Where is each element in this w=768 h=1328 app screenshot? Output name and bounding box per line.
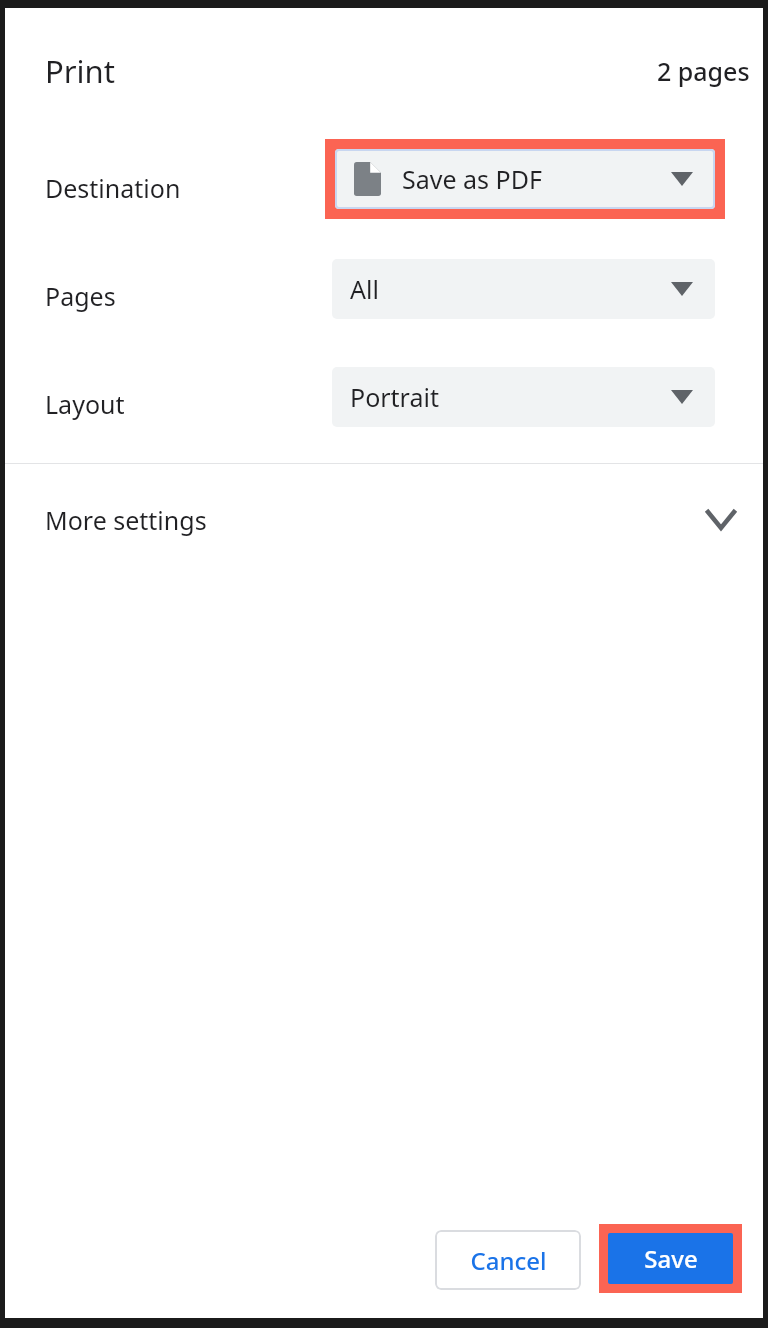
button[interactable]: Portrait bbox=[332, 367, 715, 427]
staticText: Save as PDF bbox=[402, 162, 542, 196]
button[interactable]: Save bbox=[608, 1233, 733, 1284]
other: Save as PDF document bbox=[354, 162, 381, 196]
staticText: Layout bbox=[45, 387, 125, 421]
staticText: Portrait bbox=[350, 380, 439, 414]
staticText: Cancel bbox=[470, 1244, 547, 1277]
staticText: Save bbox=[644, 1242, 698, 1275]
staticText: Destination bbox=[45, 171, 181, 205]
staticText: Pages bbox=[45, 279, 116, 313]
button[interactable]: Save as PDF document bbox=[335, 149, 715, 209]
button[interactable]: Cancel bbox=[435, 1230, 581, 1290]
button[interactable]: All bbox=[332, 259, 715, 319]
staticText: 2 pages bbox=[657, 54, 750, 88]
staticText: All bbox=[350, 272, 379, 306]
button[interactable]: More settings bbox=[5, 489, 763, 551]
staticText: Print bbox=[45, 50, 115, 92]
staticText: More settings bbox=[45, 503, 207, 537]
